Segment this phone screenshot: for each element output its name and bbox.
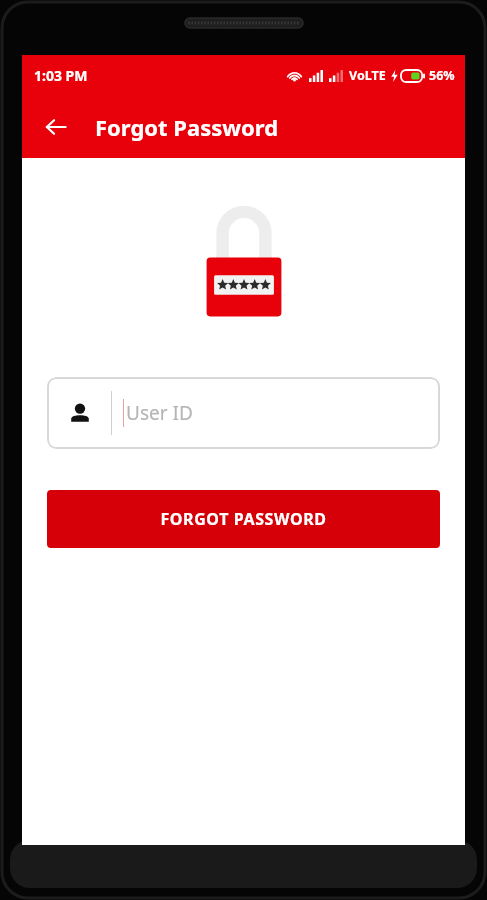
button[interactable]: Back <box>34 105 78 149</box>
button[interactable]: User ID <box>47 377 440 449</box>
button[interactable]: FORGOT PASSWORD <box>47 490 440 548</box>
staticText: User ID <box>126 400 193 426</box>
staticText: 1:03 PM <box>34 66 88 85</box>
staticText: VoLTE <box>349 67 386 84</box>
staticText: FORGOT PASSWORD <box>160 508 327 530</box>
staticText: Forgot Password <box>95 112 279 142</box>
staticText: 56% <box>429 67 455 84</box>
